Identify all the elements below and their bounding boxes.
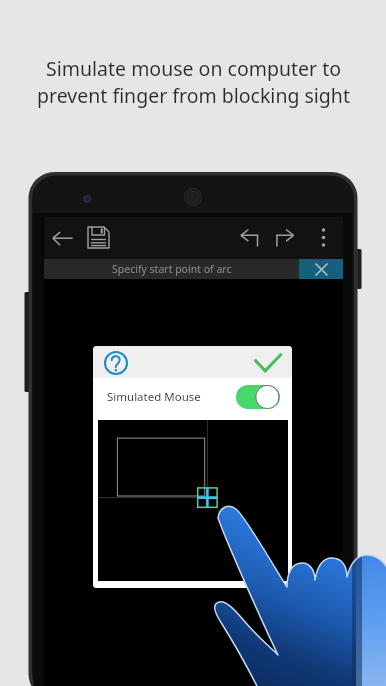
button[interactable]: Save: [85, 224, 113, 251]
button[interactable]: Back: [49, 225, 80, 252]
button[interactable]: More options: [310, 224, 337, 251]
button[interactable]: Specify start point of arc: [44, 259, 299, 279]
button[interactable]: Simulated Mouse: [93, 378, 292, 415]
button[interactable]: Confirm: [250, 350, 284, 378]
button[interactable]: Undo: [236, 224, 264, 251]
staticText: Simulate mouse on computer to prevent fi…: [37, 55, 350, 109]
staticText: Simulated Mouse: [107, 389, 201, 405]
button[interactable]: Cancel: [299, 259, 343, 279]
button[interactable]: Redo: [272, 224, 300, 251]
button[interactable]: Help: [102, 349, 130, 377]
staticText: Specify start point of arc: [112, 262, 232, 276]
